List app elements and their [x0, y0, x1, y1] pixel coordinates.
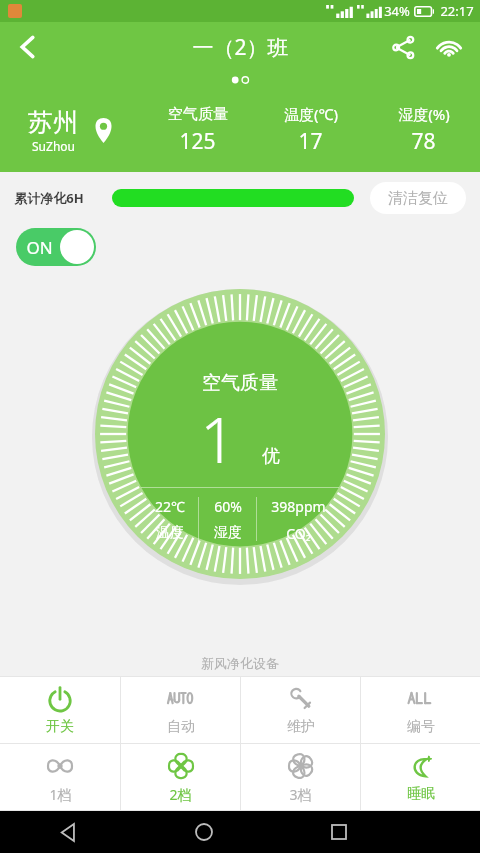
staticText: 1档 — [49, 785, 72, 804]
staticText: 维护 — [287, 718, 315, 736]
staticText: 1 — [200, 397, 236, 481]
staticText: 苏州 — [28, 107, 78, 138]
staticText: 34% — [384, 2, 410, 20]
staticText: 17 — [298, 127, 323, 156]
staticText: 温度 — [156, 524, 184, 542]
staticText: 空气质量 — [202, 371, 278, 395]
staticText: 睡眠 — [407, 785, 435, 803]
staticText: 125 — [179, 127, 216, 156]
button[interactable]: Power toggle ON — [16, 228, 96, 266]
staticText: 清洁复位 — [388, 189, 448, 208]
button[interactable]: Share — [380, 24, 426, 70]
staticText: 自动 — [167, 718, 195, 736]
staticText: 湿度 — [214, 524, 242, 542]
button[interactable]: 睡眠 — [361, 744, 480, 810]
staticText: 2档 — [169, 785, 192, 804]
button[interactable]: 开关 — [0, 677, 120, 743]
staticText: 累计净化6H — [14, 189, 84, 207]
button[interactable]: 清洁复位 — [370, 182, 466, 214]
button[interactable]: 3档 — [241, 744, 360, 810]
staticText: ON — [26, 236, 53, 259]
button[interactable]: Back — [0, 811, 136, 853]
staticText: 398ppm — [271, 497, 326, 516]
staticText: 优 — [262, 445, 280, 468]
button[interactable]: Back — [4, 23, 52, 71]
staticText: 新风净化设备 — [201, 655, 279, 671]
staticText: 编号 — [407, 718, 435, 736]
staticText: 空气质量 — [168, 105, 228, 124]
button[interactable]: 维护 — [241, 677, 360, 743]
button[interactable]: Recents — [271, 811, 406, 853]
staticText: SuZhou — [32, 138, 75, 154]
staticText: 22:17 — [440, 2, 474, 20]
staticText: 60% — [214, 497, 242, 516]
button[interactable]: 2档 — [121, 744, 240, 810]
staticText: 开关 — [46, 718, 74, 736]
button[interactable]: 自动 — [121, 677, 240, 743]
staticText: 温度(℃) — [284, 104, 338, 124]
staticText: 22℃ — [155, 497, 185, 516]
button[interactable]: 1档 — [0, 744, 120, 810]
staticText: 3档 — [289, 785, 312, 804]
staticText: CO₂ — [286, 524, 311, 543]
button[interactable]: Wi-Fi — [426, 24, 472, 70]
staticText: 湿度(%) — [398, 104, 450, 124]
button[interactable]: 编号 — [361, 677, 480, 743]
staticText: 一（2）班 — [192, 33, 289, 62]
staticText: 78 — [411, 127, 436, 156]
button[interactable]: Home — [136, 811, 271, 853]
